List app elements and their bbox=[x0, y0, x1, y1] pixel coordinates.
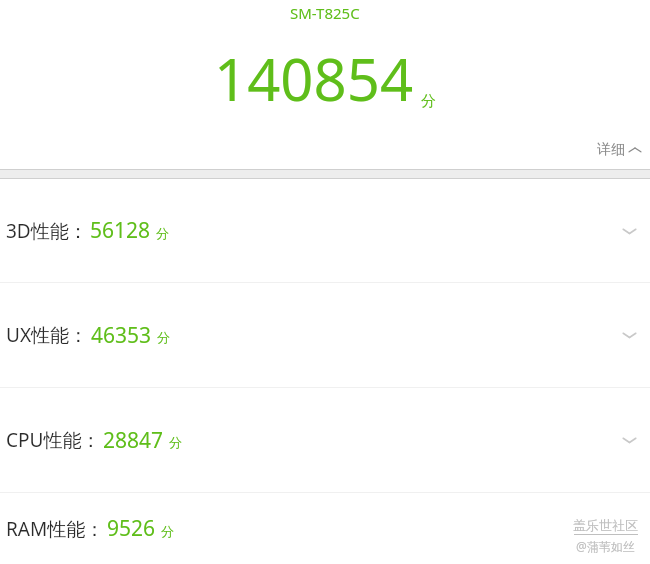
staticText: 分 bbox=[156, 225, 169, 241]
staticText: 28847 bbox=[103, 426, 164, 455]
staticText: 分 bbox=[157, 329, 170, 345]
button[interactable]: Expand 3D性能： bbox=[616, 218, 642, 244]
staticText: 盖乐世社区 bbox=[573, 517, 638, 533]
staticText: 56128 bbox=[90, 216, 151, 245]
button[interactable]: 3D性能： bbox=[0, 179, 650, 282]
button[interactable]: Expand UX性能： bbox=[616, 322, 642, 348]
staticText: 分 bbox=[161, 523, 174, 539]
staticText: CPU性能： bbox=[6, 427, 101, 453]
button[interactable]: 详细 bbox=[0, 134, 650, 166]
staticText: 140854 bbox=[214, 39, 414, 118]
staticText: 3D性能： bbox=[6, 218, 88, 244]
button[interactable]: Expand CPU性能： bbox=[616, 427, 642, 453]
button[interactable]: RAM性能： bbox=[0, 493, 650, 564]
staticText: 9526 bbox=[107, 514, 156, 543]
staticText: 分 bbox=[421, 92, 436, 111]
staticText: SM-T825C bbox=[290, 3, 360, 23]
staticText: UX性能： bbox=[6, 322, 89, 348]
button[interactable]: CPU性能： bbox=[0, 388, 650, 492]
staticText: @蒲苇如丝 bbox=[576, 538, 635, 554]
staticText: 分 bbox=[169, 434, 182, 450]
staticText: 详细 bbox=[597, 141, 625, 159]
staticText: 46353 bbox=[91, 321, 152, 350]
staticText: RAM性能： bbox=[6, 516, 105, 542]
button[interactable]: UX性能： bbox=[0, 283, 650, 387]
